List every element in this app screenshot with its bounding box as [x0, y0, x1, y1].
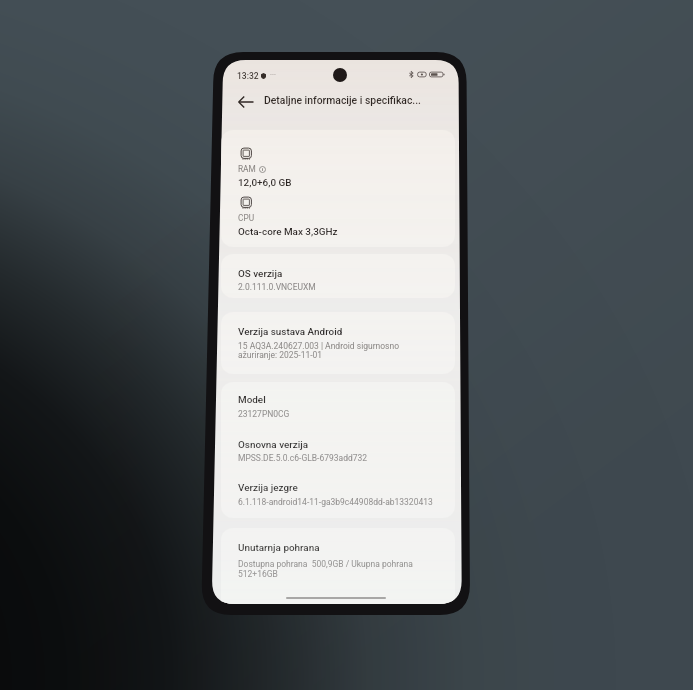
staticText: RAM — [238, 164, 256, 174]
staticText: Dostupna pohrana 500,9GB / Ukupna pohran… — [238, 559, 413, 569]
staticText: Octa-core Max 3,3GHz — [238, 226, 338, 238]
button[interactable] — [221, 382, 455, 518]
staticText: MPSS.DE.5.0.c6-GLB-6793add732 — [238, 453, 368, 463]
staticText: Verzija sustava Android — [238, 326, 343, 338]
staticText: Unutarnja pohrana — [238, 542, 320, 554]
staticText: OS verzija — [238, 268, 283, 280]
staticText: 6.1.118-android14-11-ga3b9c44908dd-ab133… — [238, 497, 433, 507]
staticText: CPU — [238, 213, 255, 223]
button[interactable] — [221, 312, 455, 374]
staticText: 15 AQ3A.240627.003 | Android sigurnosno — [238, 341, 400, 351]
staticText: 2.0.111.0.VNCEUXM — [238, 282, 316, 292]
staticText: 23127PN0CG — [238, 409, 290, 419]
button[interactable]: Back — [233, 89, 259, 115]
staticText: 512+16GB — [238, 569, 278, 579]
button[interactable] — [221, 130, 455, 247]
staticText: 12,0+6,0 GB — [238, 177, 292, 189]
staticText: Model — [238, 394, 266, 406]
button[interactable] — [221, 254, 455, 298]
staticText: Detaljne informacije i specifikac... — [264, 94, 421, 106]
staticText: 13:32 — [237, 71, 259, 81]
staticText: ažuriranje: 2025-11-01 — [238, 350, 323, 360]
button[interactable] — [221, 528, 455, 604]
staticText: ··· — [270, 70, 276, 79]
staticText: Osnovna verzija — [238, 439, 309, 451]
staticText: Verzija jezgre — [238, 482, 298, 494]
